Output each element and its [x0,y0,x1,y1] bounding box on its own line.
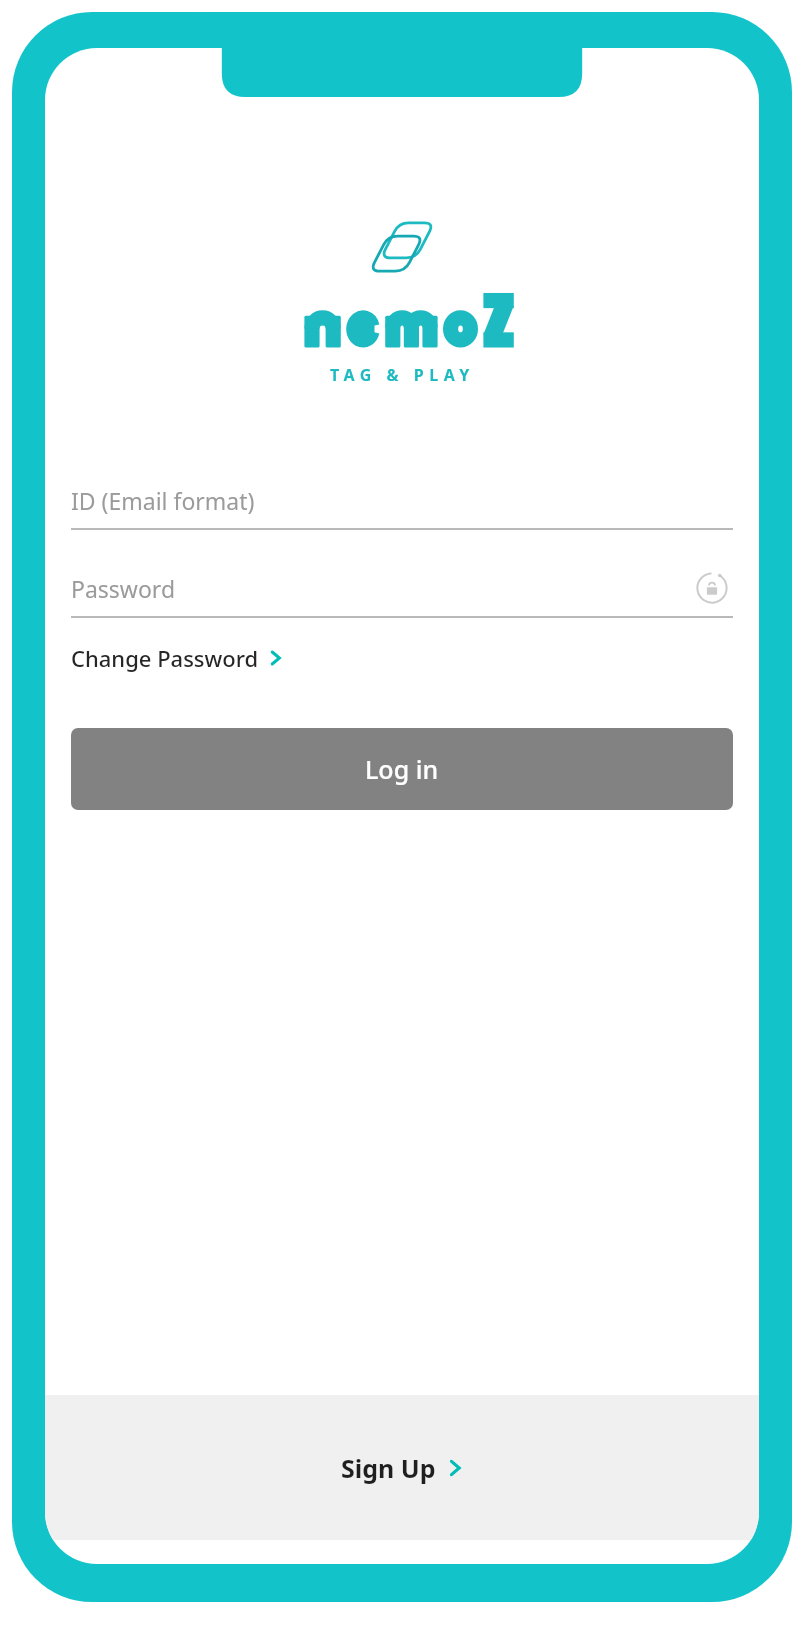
button[interactable]: Log in [71,728,733,810]
button[interactable]: Change Password [71,638,283,678]
button[interactable]: ID (Email format) [71,472,733,528]
button[interactable]: Sign Up [45,1395,759,1540]
staticText: TAG & PLAY [330,364,475,386]
staticText: Sign Up [341,1451,436,1485]
staticText: ID (Email format) [71,485,255,516]
staticText: Change Password [71,643,259,673]
button[interactable]: Reset password [691,567,733,609]
button[interactable]: Password [71,560,733,616]
staticText: Password [71,573,691,604]
staticText: Log in [365,752,439,786]
